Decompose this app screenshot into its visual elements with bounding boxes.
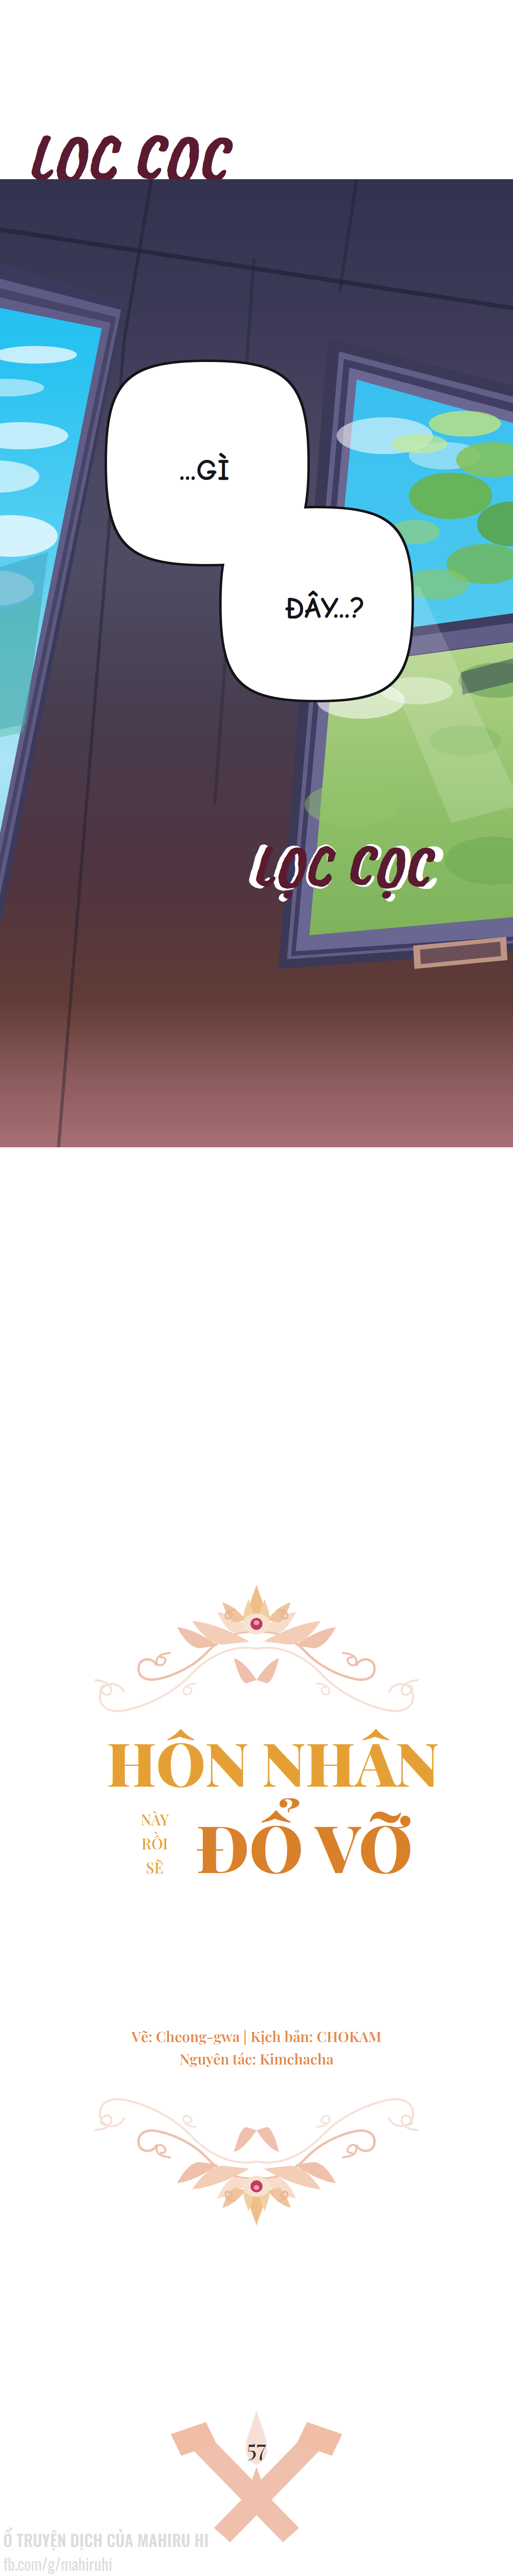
staticText: LỌC CỌC — [245, 823, 438, 908]
staticText: Vẽ: Cheong-gwa | Kịch bản: CHOKAM — [131, 2026, 382, 2046]
staticText: ĐỔ VỠ — [196, 1803, 413, 1889]
staticText: Ổ TRUYỆN DỊCH CỦA MAHIRU HI — [3, 2528, 209, 2552]
staticText: 57 — [247, 2431, 266, 2463]
staticText: HÔN NHÂN — [107, 1722, 439, 1802]
staticText: LỌC CỌC — [19, 110, 235, 204]
staticText: LỌC CỌC — [252, 826, 431, 905]
staticText: SẼ — [146, 1857, 164, 1877]
staticText: fb.com/g/mahiruhi — [3, 2552, 112, 2575]
staticText: ...GÌ — [179, 453, 229, 487]
staticText: LỌC CỌC — [27, 113, 228, 201]
staticText: Nguyên tác: Kimchacha — [180, 2049, 333, 2068]
staticText: RỒI — [141, 1833, 168, 1853]
staticText: NÀY — [141, 1809, 169, 1829]
staticText: ĐÂY...? — [284, 591, 365, 625]
